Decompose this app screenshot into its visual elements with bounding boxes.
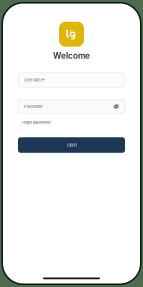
staticText: Username* xyxy=(24,78,45,82)
button[interactable]: Password* xyxy=(18,99,125,114)
staticText: Password* xyxy=(24,104,43,109)
button[interactable]: Username* xyxy=(18,73,125,87)
button[interactable]: Log In xyxy=(18,137,125,153)
staticText: Welcome xyxy=(53,51,90,61)
staticText: Log In xyxy=(66,143,76,147)
button[interactable]: Forgot password? xyxy=(22,119,51,126)
staticText: Forgot password? xyxy=(22,120,51,125)
